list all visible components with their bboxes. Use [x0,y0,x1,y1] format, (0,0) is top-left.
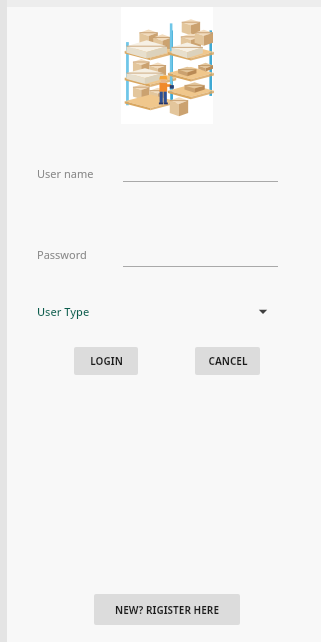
button[interactable]: CANCEL [195,347,260,375]
staticText: User Type [37,304,90,319]
staticText: LOGIN [90,354,123,368]
staticText: CANCEL [208,354,248,368]
staticText: NEW? RIGISTER HERE [115,603,219,617]
staticText: User name [37,166,94,181]
button[interactable]: User Type [37,300,268,322]
other: Open user type dropdown [258,306,268,316]
button[interactable]: LOGIN [74,347,138,375]
button[interactable]: NEW? RIGISTER HERE [94,594,240,625]
staticText: Password [37,247,87,262]
